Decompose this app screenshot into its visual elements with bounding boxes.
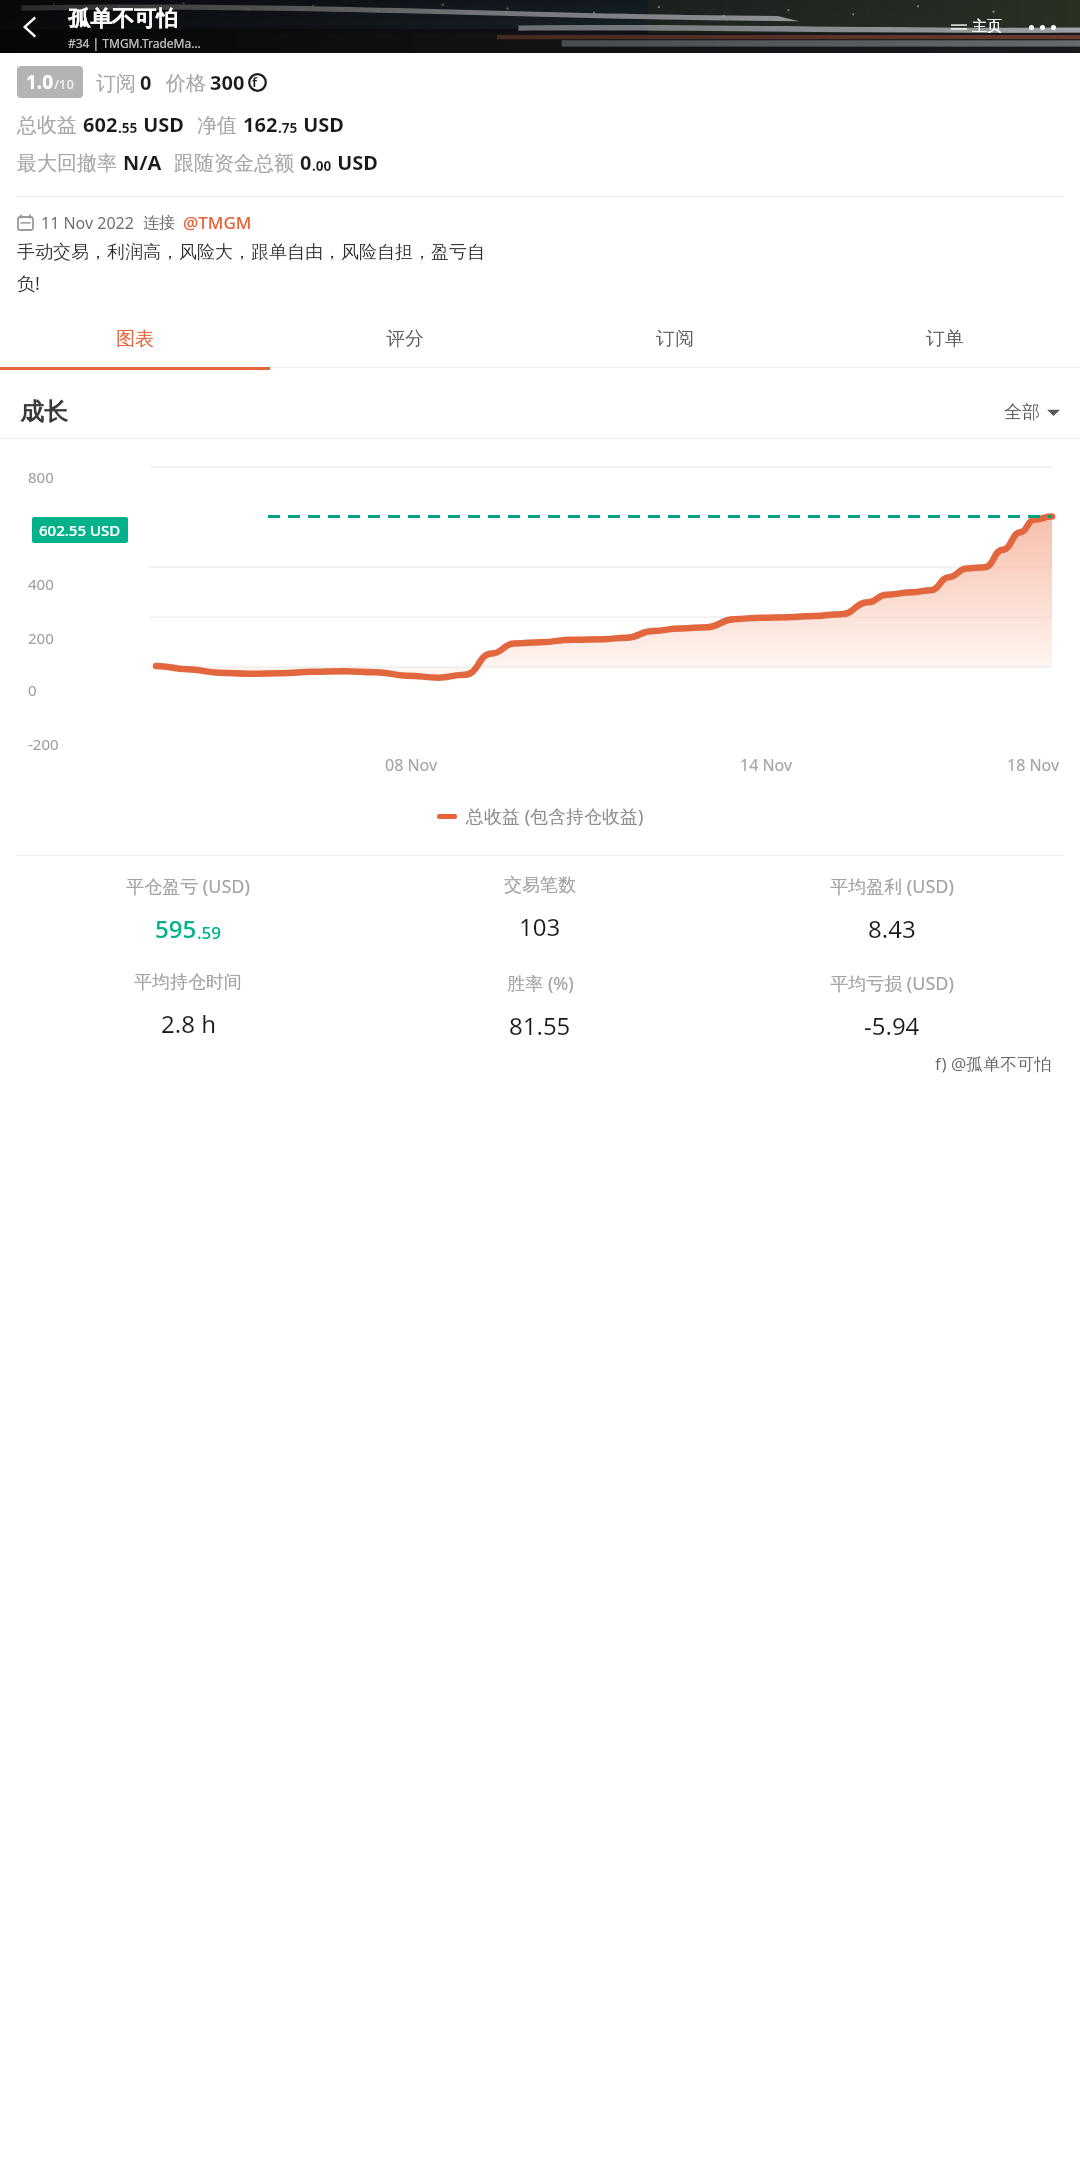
staticText: 净值 [197, 111, 243, 138]
button[interactable]: Back [6, 3, 54, 51]
staticText: 800 [28, 467, 54, 487]
staticText: 订阅 [96, 71, 136, 96]
staticText: .00 [312, 156, 332, 175]
staticText: 价格 [166, 71, 206, 96]
staticText: 400 [28, 574, 54, 594]
staticText: 602 [83, 111, 118, 138]
staticText: 全部 [1004, 401, 1040, 424]
staticText: 主页 [972, 17, 1002, 36]
staticText: 0 [140, 69, 152, 96]
staticText: USD [138, 111, 184, 138]
staticText: 最大回撤率 [17, 149, 123, 176]
staticText: 8.43 [868, 912, 916, 945]
staticText: 14 Nov [740, 754, 793, 776]
staticText: 连接 [143, 213, 175, 233]
staticText: USD [332, 149, 378, 176]
button[interactable]: 订单 [810, 318, 1080, 360]
staticText: f) @孤单不可怕 [935, 1052, 1052, 1075]
staticText: 总收益 [17, 111, 83, 138]
staticText: 300 [210, 69, 245, 96]
staticText: 跟随资金总额 [174, 149, 300, 176]
staticText: 81.55 [509, 1009, 571, 1042]
staticText: .75 [278, 118, 298, 137]
staticText: 200 [28, 628, 54, 648]
staticText: 602.55 USD [39, 520, 121, 540]
staticText: 成长 [20, 397, 68, 427]
staticText: N/A [123, 149, 162, 176]
staticText: 平均持仓时间 [134, 971, 242, 994]
staticText: 手动交易，利润高，风险大，跟单自由，风险自担，盈亏自 [17, 241, 485, 264]
staticText: 交易笔数 [504, 874, 576, 897]
staticText: 1.0 [26, 69, 54, 95]
staticText: .59 [197, 921, 222, 944]
staticText: 0 [300, 149, 312, 176]
staticText: 08 Nov [385, 754, 438, 776]
staticText: f [252, 73, 258, 91]
staticText: 图表 [116, 327, 154, 351]
button[interactable]: 图表 [0, 318, 270, 360]
staticText: 订单 [926, 327, 964, 351]
staticText: 平仓盈亏 (USD) [126, 874, 250, 899]
staticText: @TMGM [183, 211, 252, 234]
staticText: 18 Nov [1007, 754, 1060, 776]
button[interactable]: 订阅 [540, 318, 810, 360]
button[interactable]: 评分 [270, 318, 540, 360]
staticText: 平均盈利 (USD) [830, 874, 954, 899]
staticText: 11 Nov 2022 [41, 212, 134, 234]
staticText: 162 [243, 111, 278, 138]
staticText: 孤单不可怕 [68, 5, 178, 33]
staticText: #34 | TMGM.TradeMa... [68, 35, 201, 51]
staticText: 评分 [386, 327, 424, 351]
staticText: -5.94 [864, 1009, 920, 1042]
staticText: 平均亏损 (USD) [830, 971, 954, 996]
staticText: 2.8 h [161, 1007, 216, 1040]
staticText: 负! [17, 271, 40, 296]
staticText: .55 [118, 118, 138, 137]
button[interactable]: 主页 [951, 17, 1002, 36]
staticText: 595 [155, 912, 197, 945]
staticText: 103 [519, 910, 561, 943]
staticText: 订阅 [656, 327, 694, 351]
staticText: /10 [54, 75, 74, 93]
staticText: 0 [28, 680, 37, 700]
button[interactable]: @TMGM [183, 211, 252, 234]
staticText: -200 [28, 734, 59, 754]
staticText: 胜率 (%) [507, 971, 574, 996]
button[interactable]: 全部 [1004, 401, 1060, 424]
button[interactable]: More options [1020, 5, 1064, 49]
staticText: USD [298, 111, 344, 138]
staticText: 总收益 (包含持仓收益) [466, 804, 644, 829]
